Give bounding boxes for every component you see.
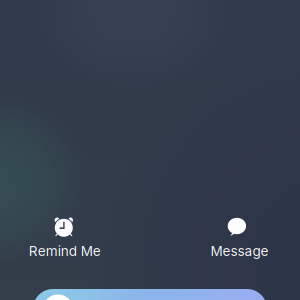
staticText: Message xyxy=(210,243,268,259)
button[interactable]: Remind Me xyxy=(5,207,125,263)
staticText: Remind Me xyxy=(29,243,101,259)
button[interactable]: Message xyxy=(179,207,299,263)
